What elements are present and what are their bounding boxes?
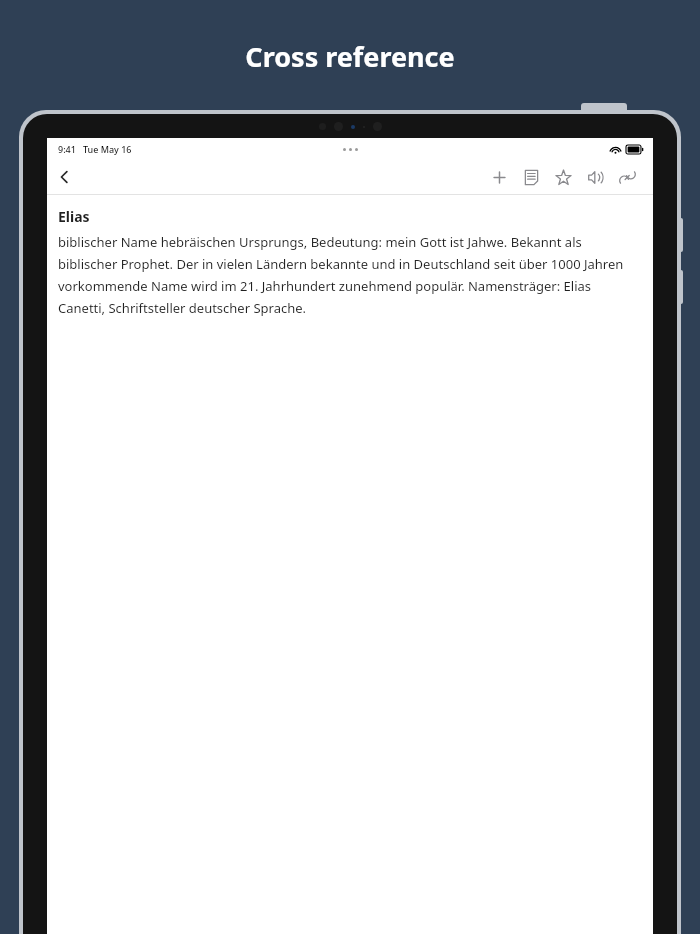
staticText: Elias xyxy=(58,207,90,226)
staticText: Cross reference xyxy=(245,38,455,75)
button[interactable]: Add xyxy=(483,161,515,193)
staticText: 9:41 Tue May 16 xyxy=(58,143,132,155)
button[interactable]: Link xyxy=(611,161,643,193)
button[interactable]: Back xyxy=(47,160,81,194)
staticText: biblischer Name hebräischen Ursprungs, B… xyxy=(58,233,637,317)
button[interactable]: Speak xyxy=(579,161,611,193)
button[interactable]: Note xyxy=(515,161,547,193)
button[interactable]: Favorite xyxy=(547,161,579,193)
